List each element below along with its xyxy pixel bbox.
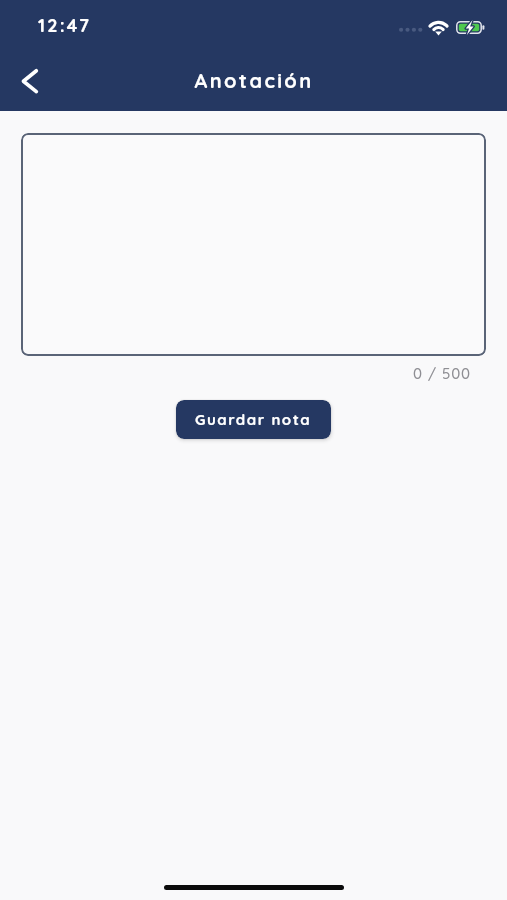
button[interactable]: Guardar nota <box>176 400 331 439</box>
button[interactable]: Back <box>7 58 51 102</box>
staticText: Anotación <box>194 68 314 93</box>
staticText: 12:47 <box>38 14 92 37</box>
staticText: 0 / 500 <box>0 364 471 383</box>
staticText: Guardar nota <box>195 410 312 429</box>
button[interactable] <box>21 133 486 356</box>
